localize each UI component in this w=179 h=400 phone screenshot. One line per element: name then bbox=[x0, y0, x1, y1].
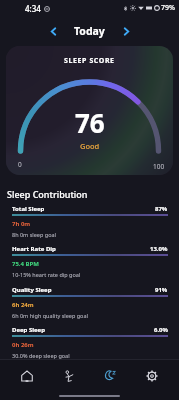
staticText: 8h 0m sleep goal bbox=[12, 231, 56, 238]
staticText: 10-15% heart rate dip goal bbox=[12, 271, 81, 278]
button[interactable]: Total Sleep bbox=[0, 205, 179, 241]
staticText: 0 bbox=[18, 160, 22, 169]
staticText: Today bbox=[74, 24, 105, 38]
staticText: Deep Sleep bbox=[12, 326, 45, 334]
button[interactable]: Previous day bbox=[42, 20, 64, 42]
staticText: 6h 0m high quality sleep goal bbox=[12, 312, 88, 319]
staticText: 4:34 bbox=[25, 3, 41, 14]
button[interactable]: Heart Rate Dip bbox=[0, 245, 179, 281]
staticText: Total Sleep bbox=[12, 205, 45, 213]
staticText: Heart Rate Dip bbox=[12, 245, 56, 253]
staticText: 6.0% bbox=[154, 326, 168, 334]
staticText: 0h 26m bbox=[12, 341, 34, 349]
staticText: 6h 24m bbox=[12, 301, 34, 309]
staticText: 79% bbox=[161, 3, 175, 13]
button[interactable]: Quality Sleep bbox=[0, 286, 179, 322]
staticText: 75.4 BPM bbox=[12, 260, 39, 268]
staticText: 7h 0m bbox=[12, 220, 31, 228]
staticText: 76 bbox=[75, 105, 105, 140]
staticText: 87% bbox=[155, 205, 168, 213]
staticText: 13.0% bbox=[150, 245, 168, 253]
button[interactable]: Next day bbox=[115, 20, 137, 42]
staticText: Sleep Contribution bbox=[7, 188, 88, 200]
button[interactable]: Sleep bbox=[96, 362, 124, 390]
button[interactable]: Activity bbox=[55, 362, 83, 390]
staticText: 100 bbox=[153, 162, 165, 171]
button[interactable]: SLEEP SCORE bbox=[6, 46, 173, 175]
staticText: SLEEP SCORE bbox=[64, 56, 115, 66]
staticText: Quality Sleep bbox=[12, 286, 52, 294]
button[interactable]: Deep Sleep bbox=[0, 326, 179, 362]
staticText: Good bbox=[80, 141, 100, 151]
staticText: 30.0% deep sleep goal bbox=[12, 352, 70, 359]
staticText: 91% bbox=[155, 286, 168, 294]
button[interactable]: Settings bbox=[138, 362, 166, 390]
button[interactable]: Home bbox=[13, 362, 41, 390]
